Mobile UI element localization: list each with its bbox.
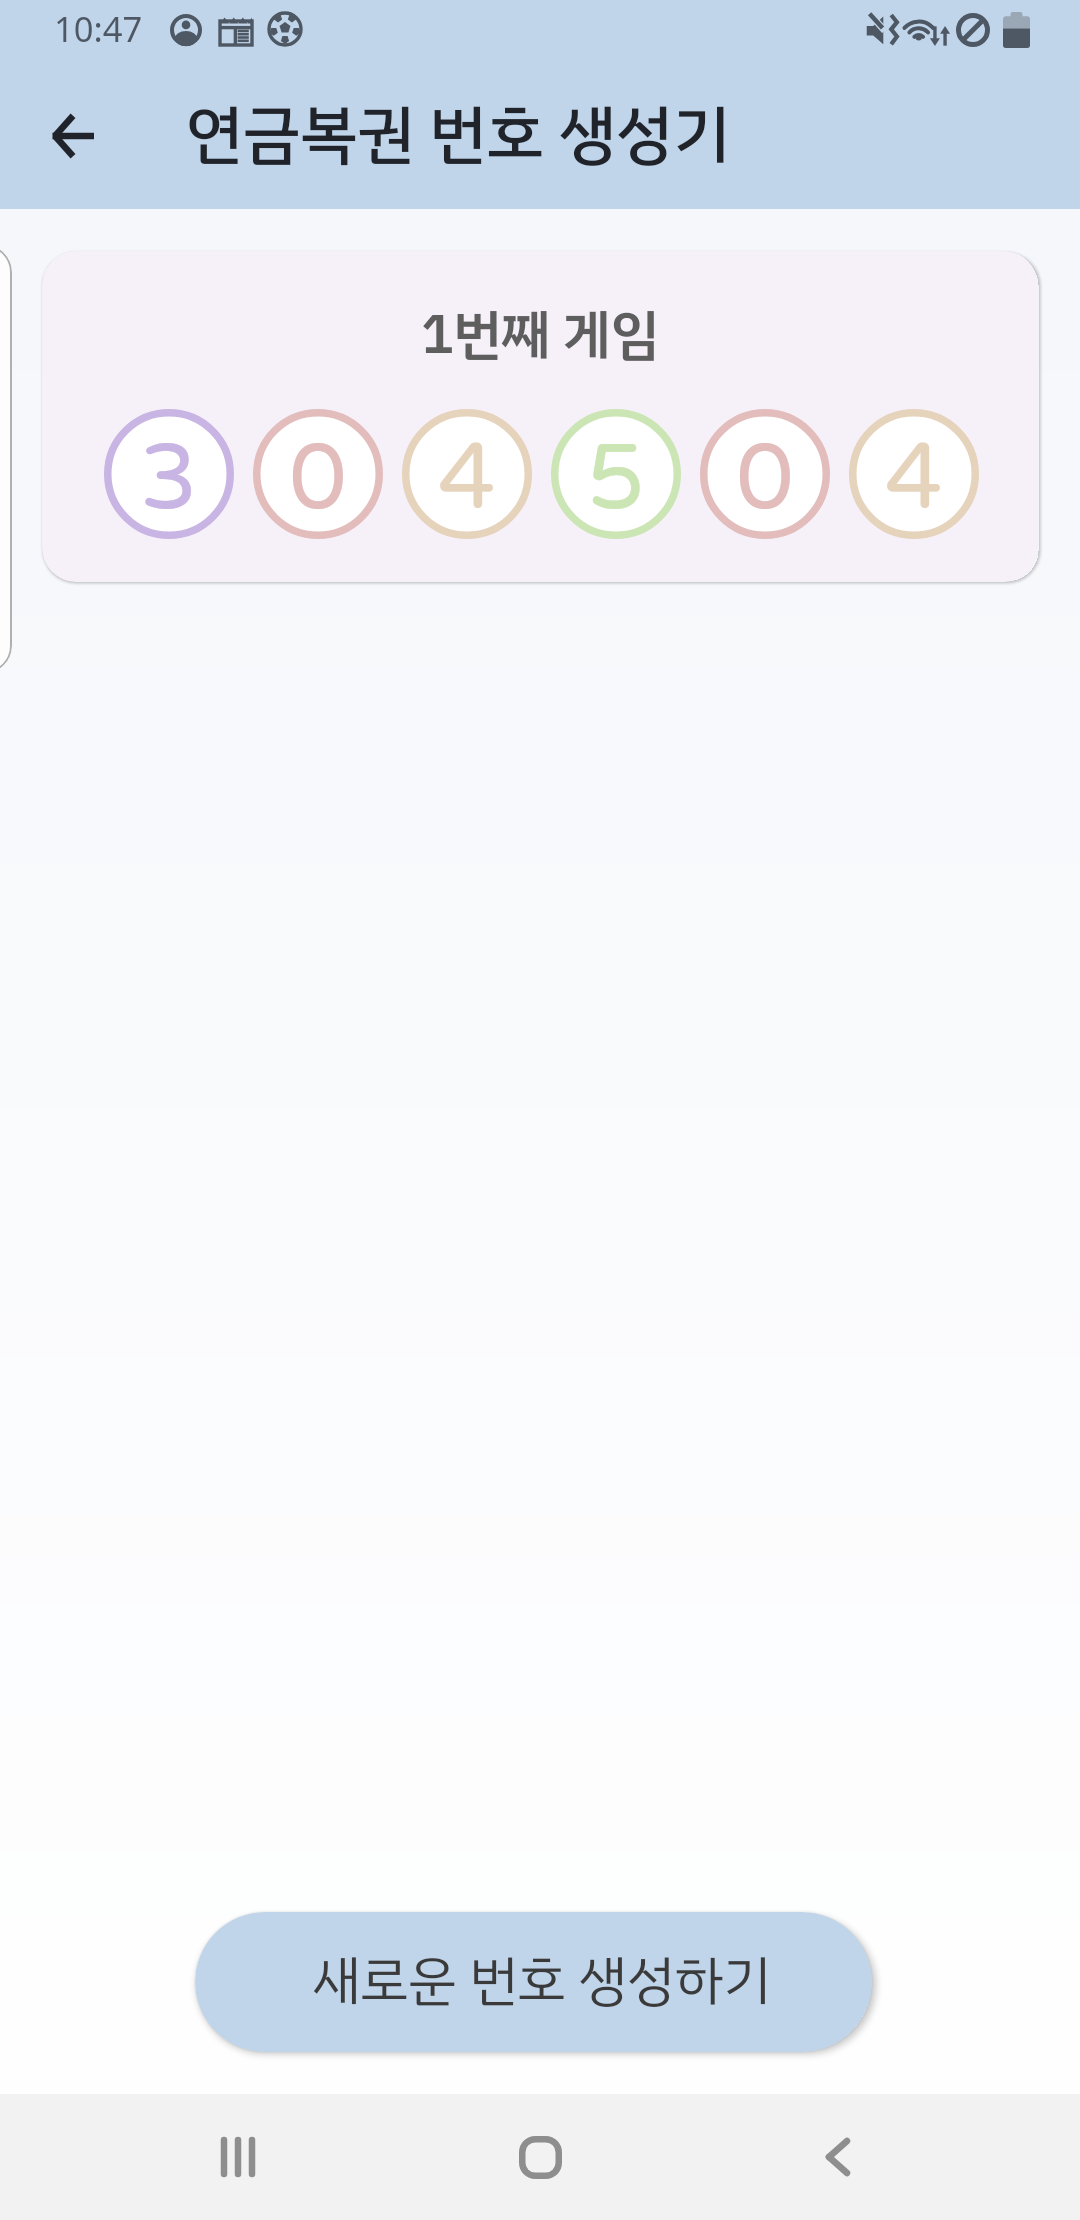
staticText: 연금복권 번호 생성기: [186, 87, 730, 183]
staticText: 5: [587, 424, 645, 535]
staticText: 1번째 게임: [421, 294, 659, 375]
staticText: 10:47: [54, 5, 143, 52]
button[interactable]: 1번째 게임: [42, 251, 1038, 582]
button[interactable]: Back: [28, 91, 118, 181]
button[interactable]: Recent apps: [178, 2097, 298, 2217]
staticText: 4: [438, 424, 496, 535]
button[interactable]: Back: [778, 2097, 898, 2217]
staticText: 4: [885, 424, 943, 535]
button[interactable]: 새로운 번호 생성하기: [195, 1912, 872, 2052]
staticText: 새로운 번호 생성하기: [312, 1940, 771, 2021]
staticText: 0: [736, 424, 794, 535]
staticText: 3: [140, 424, 198, 535]
button[interactable]: Home: [480, 2097, 600, 2217]
staticText: 0: [289, 424, 347, 535]
